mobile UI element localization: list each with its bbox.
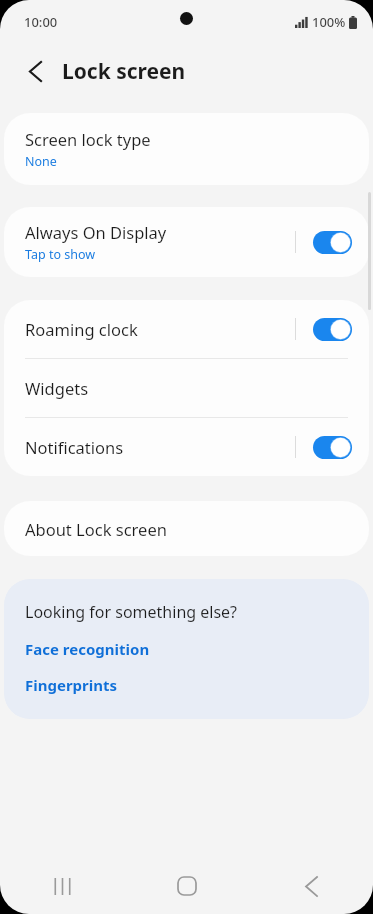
staticText: 10:00 <box>24 13 58 31</box>
staticText: None <box>25 153 57 170</box>
button[interactable]: Always On Display <box>4 207 369 277</box>
button[interactable]: Recents <box>0 858 125 914</box>
button[interactable]: Home <box>125 858 249 914</box>
staticText: About Lock screen <box>25 518 167 540</box>
button[interactable]: Back <box>249 858 373 914</box>
button[interactable]: About Lock screen <box>4 501 369 556</box>
staticText: Roaming clock <box>25 318 138 340</box>
staticText: Tap to show <box>25 246 96 263</box>
button[interactable]: Screen lock type <box>4 113 369 185</box>
staticText: Looking for something else? <box>25 601 238 623</box>
staticText: Face recognition <box>25 639 150 659</box>
button[interactable]: Notifications <box>4 418 369 476</box>
button[interactable]: Widgets <box>4 359 369 417</box>
staticText: Widgets <box>25 377 89 399</box>
staticText: Fingerprints <box>25 675 118 695</box>
staticText: 100% <box>312 13 346 31</box>
button[interactable]: Roaming clock <box>4 300 369 358</box>
staticText: Notifications <box>25 436 124 458</box>
staticText: Screen lock type <box>25 128 151 150</box>
button[interactable]: Fingerprints <box>25 675 118 695</box>
button[interactable]: Face recognition <box>25 639 150 659</box>
button[interactable]: Back <box>18 54 52 88</box>
staticText: Always On Display <box>25 221 167 243</box>
staticText: Lock screen <box>62 57 186 86</box>
